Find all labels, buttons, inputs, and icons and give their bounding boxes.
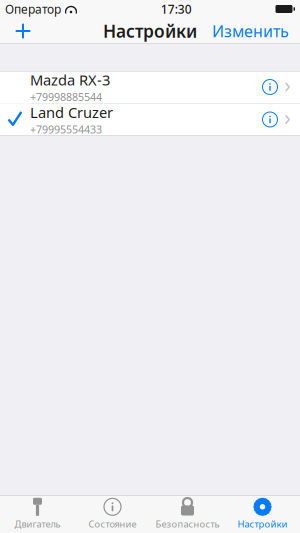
button[interactable]: Изменить	[204, 18, 297, 44]
staticText: Mazda RX-3	[30, 70, 110, 90]
staticText: Land Cruzer	[30, 103, 113, 122]
button[interactable]: Двигатель	[0, 495, 75, 533]
button[interactable]: Безопасность	[150, 495, 225, 533]
button[interactable]: Mazda RX-3	[0, 71, 300, 103]
button[interactable]: Land Cruzer	[0, 103, 300, 135]
staticText: Настройки	[103, 19, 197, 42]
staticText: Безопасность	[155, 518, 219, 530]
staticText: +79998885544	[30, 90, 102, 104]
button[interactable]: Добавить	[3, 18, 43, 44]
button[interactable]: Состояние	[75, 495, 150, 533]
staticText: Изменить	[212, 20, 289, 42]
staticText: 17:30	[161, 1, 192, 17]
staticText: Оператор	[5, 1, 61, 17]
staticText: Состояние	[88, 518, 136, 530]
staticText: +79995554433	[30, 122, 102, 136]
staticText: Настройки	[237, 518, 287, 530]
staticText: Двигатель	[14, 518, 60, 530]
button[interactable]: Настройки	[225, 495, 300, 533]
